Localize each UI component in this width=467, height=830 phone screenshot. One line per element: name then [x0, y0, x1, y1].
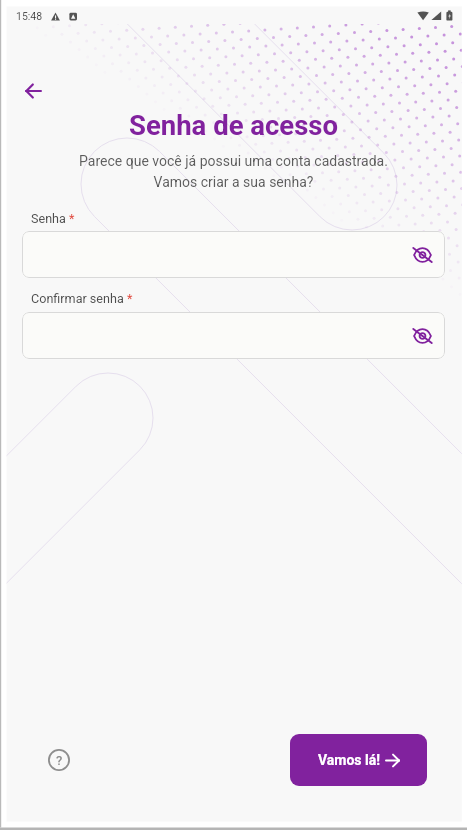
staticText: Senha * [31, 211, 75, 226]
staticText: Confirmar senha * [31, 291, 133, 306]
staticText: ? [56, 753, 63, 768]
staticText: Parece que você já possui uma conta cada… [0, 153, 467, 190]
button[interactable]: Toggle password visibility [22, 312, 445, 359]
button[interactable]: Toggle password visibility [406, 320, 438, 352]
button[interactable]: Toggle password visibility [406, 239, 438, 271]
button[interactable]: Toggle password visibility [22, 231, 445, 278]
button[interactable]: Help [38, 739, 80, 781]
staticText: 15:48 [16, 10, 43, 22]
button[interactable]: Back [12, 70, 54, 112]
button[interactable]: Vamos lá! [290, 734, 427, 786]
staticText: Vamos lá! [318, 752, 381, 768]
staticText: Senha de acesso [0, 109, 467, 141]
